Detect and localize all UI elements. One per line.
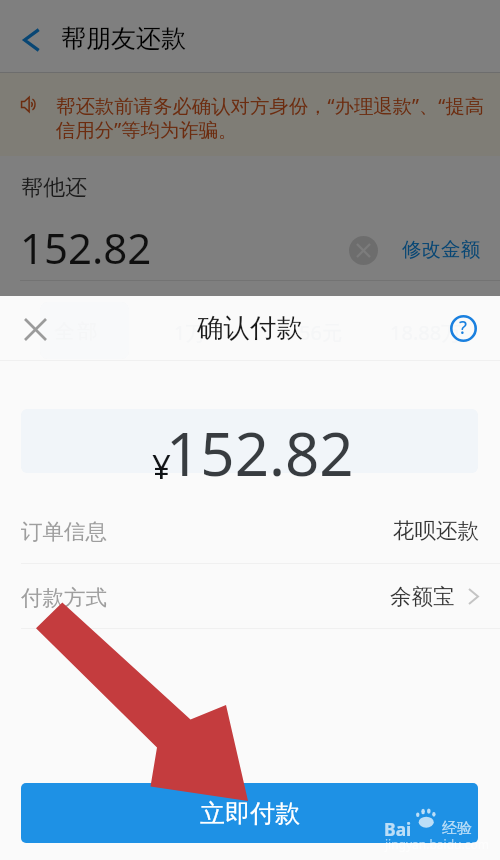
button[interactable]: 修改金额 [402,237,480,262]
button[interactable]: 订单信息 [0,498,500,563]
button[interactable]: Help [450,315,477,342]
staticText: jingyan.baidu.com [385,836,489,852]
staticText: ¥ [152,444,171,489]
button[interactable]: Clear amount [349,236,378,265]
staticText: 付款方式 [21,584,107,611]
staticText: 信用分”等均为诈骗。 [56,116,238,142]
staticText: 确认付款 [197,311,303,344]
staticText: 帮朋友还款 [61,23,186,54]
staticText: ? [459,315,468,340]
staticText: 经验 [442,819,472,838]
staticText: 帮他还 [21,174,87,202]
staticText: 18.88万 [390,319,462,346]
button[interactable]: Close [16,310,54,348]
staticText: 订单信息 [21,518,107,545]
staticText: 56元 [299,319,342,346]
staticText: Bai [384,817,412,841]
staticText: 152.82 [166,412,354,494]
button[interactable]: Back [8,5,54,75]
button[interactable]: 立即付款 [21,783,478,843]
staticText: 余额宝 [390,583,455,610]
staticText: 1万 [174,319,206,346]
staticText: 152.82 [20,219,152,276]
staticText: 立即付款 [200,798,300,829]
button[interactable]: 付款方式 [0,564,500,628]
staticText: 花呗还款 [393,517,479,544]
staticText: 帮还款前请务必确认对方身份，“办理退款”、“提高 [56,92,485,118]
